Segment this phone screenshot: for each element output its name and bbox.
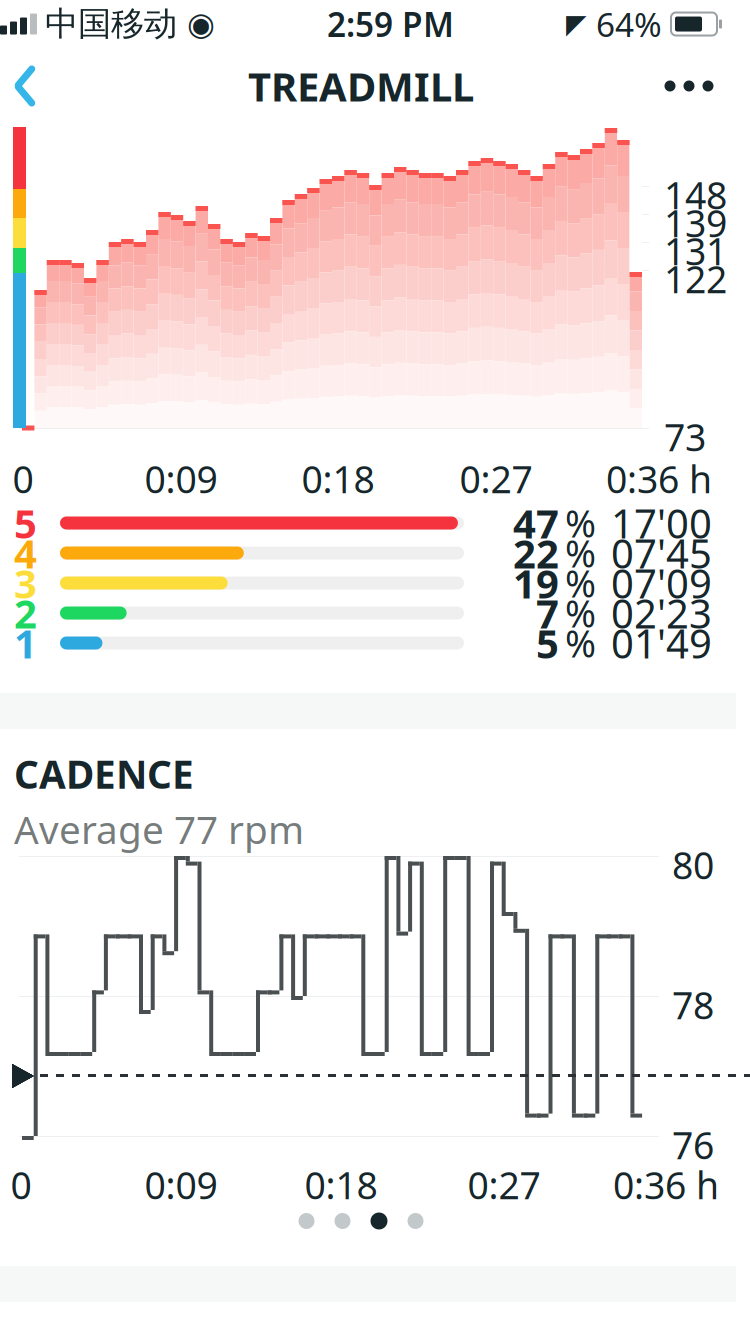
staticText: 0:27 [467, 1160, 540, 1210]
staticText: % [565, 528, 596, 578]
staticText: CADENCE [14, 748, 194, 799]
staticText: 131 [664, 226, 727, 276]
staticText: 19 [513, 556, 559, 609]
staticText: 0:36 h [613, 1160, 719, 1210]
staticText: 0:27 [459, 454, 532, 504]
staticText: 5 [14, 496, 37, 549]
staticText: 02'23 [611, 586, 712, 639]
staticText: 0:18 [301, 454, 374, 504]
staticText: 07'09 [611, 556, 712, 609]
staticText: % [565, 498, 596, 548]
staticText: ◉ [187, 6, 215, 42]
staticText: 17'00 [611, 496, 712, 549]
staticText: 7 [536, 586, 559, 639]
staticText: 76 [672, 1120, 714, 1170]
staticText: 01'49 [611, 616, 712, 669]
staticText: Average 77 rpm [14, 803, 304, 855]
staticText: 73 [664, 412, 706, 462]
staticText: 5 [536, 616, 559, 669]
staticText: 0:09 [144, 1160, 217, 1210]
staticText: 122 [664, 254, 727, 304]
staticText: 148 [664, 170, 727, 220]
staticText: 1 [14, 616, 37, 669]
staticText: 0:09 [144, 454, 217, 504]
staticText: 64% [596, 2, 662, 46]
staticText: 22 [513, 526, 559, 579]
staticText: 0:36 h [606, 454, 712, 504]
staticText: 07'45 [611, 526, 712, 579]
staticText: TREADMILL [248, 59, 474, 112]
staticText: % [565, 618, 596, 668]
staticText: % [565, 558, 596, 608]
staticText: 3 [14, 556, 37, 609]
button[interactable]: More options [646, 48, 732, 124]
staticText: 中国移动 [45, 3, 177, 44]
staticText: 2 [14, 586, 37, 639]
staticText: 4 [14, 526, 37, 579]
staticText: 0 [12, 454, 33, 504]
staticText: 2:59 PM [327, 2, 454, 46]
button[interactable]: Back [0, 48, 64, 124]
staticText: ◤ [566, 9, 587, 39]
staticText: % [565, 588, 596, 638]
staticText: 139 [664, 198, 727, 248]
staticText: 0 [10, 1160, 31, 1210]
staticText: 78 [672, 980, 714, 1030]
staticText: 0:18 [304, 1160, 377, 1210]
staticText: 47 [513, 496, 559, 549]
staticText: 80 [672, 840, 714, 890]
